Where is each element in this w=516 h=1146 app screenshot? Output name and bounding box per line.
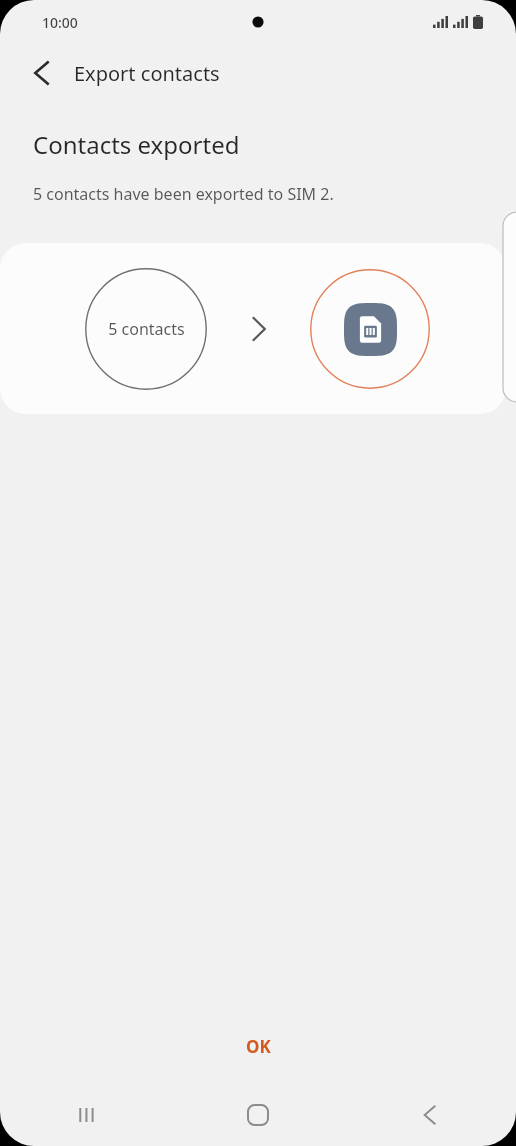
button[interactable]: Recent apps [0, 1084, 172, 1146]
button[interactable]: Back [344, 1084, 516, 1146]
button[interactable]: Back [18, 49, 66, 97]
button[interactable]: 5 contacts [0, 243, 506, 414]
staticText: Export contacts [74, 60, 220, 87]
staticText: 5 contacts [108, 318, 185, 340]
staticText: 5 contacts have been exported to SIM 2. [33, 183, 334, 205]
staticText: OK [246, 1035, 271, 1058]
button[interactable]: OK [224, 1025, 293, 1068]
button[interactable]: Home [172, 1084, 344, 1146]
staticText: Contacts exported [33, 128, 240, 161]
staticText: 10:00 [42, 13, 78, 32]
